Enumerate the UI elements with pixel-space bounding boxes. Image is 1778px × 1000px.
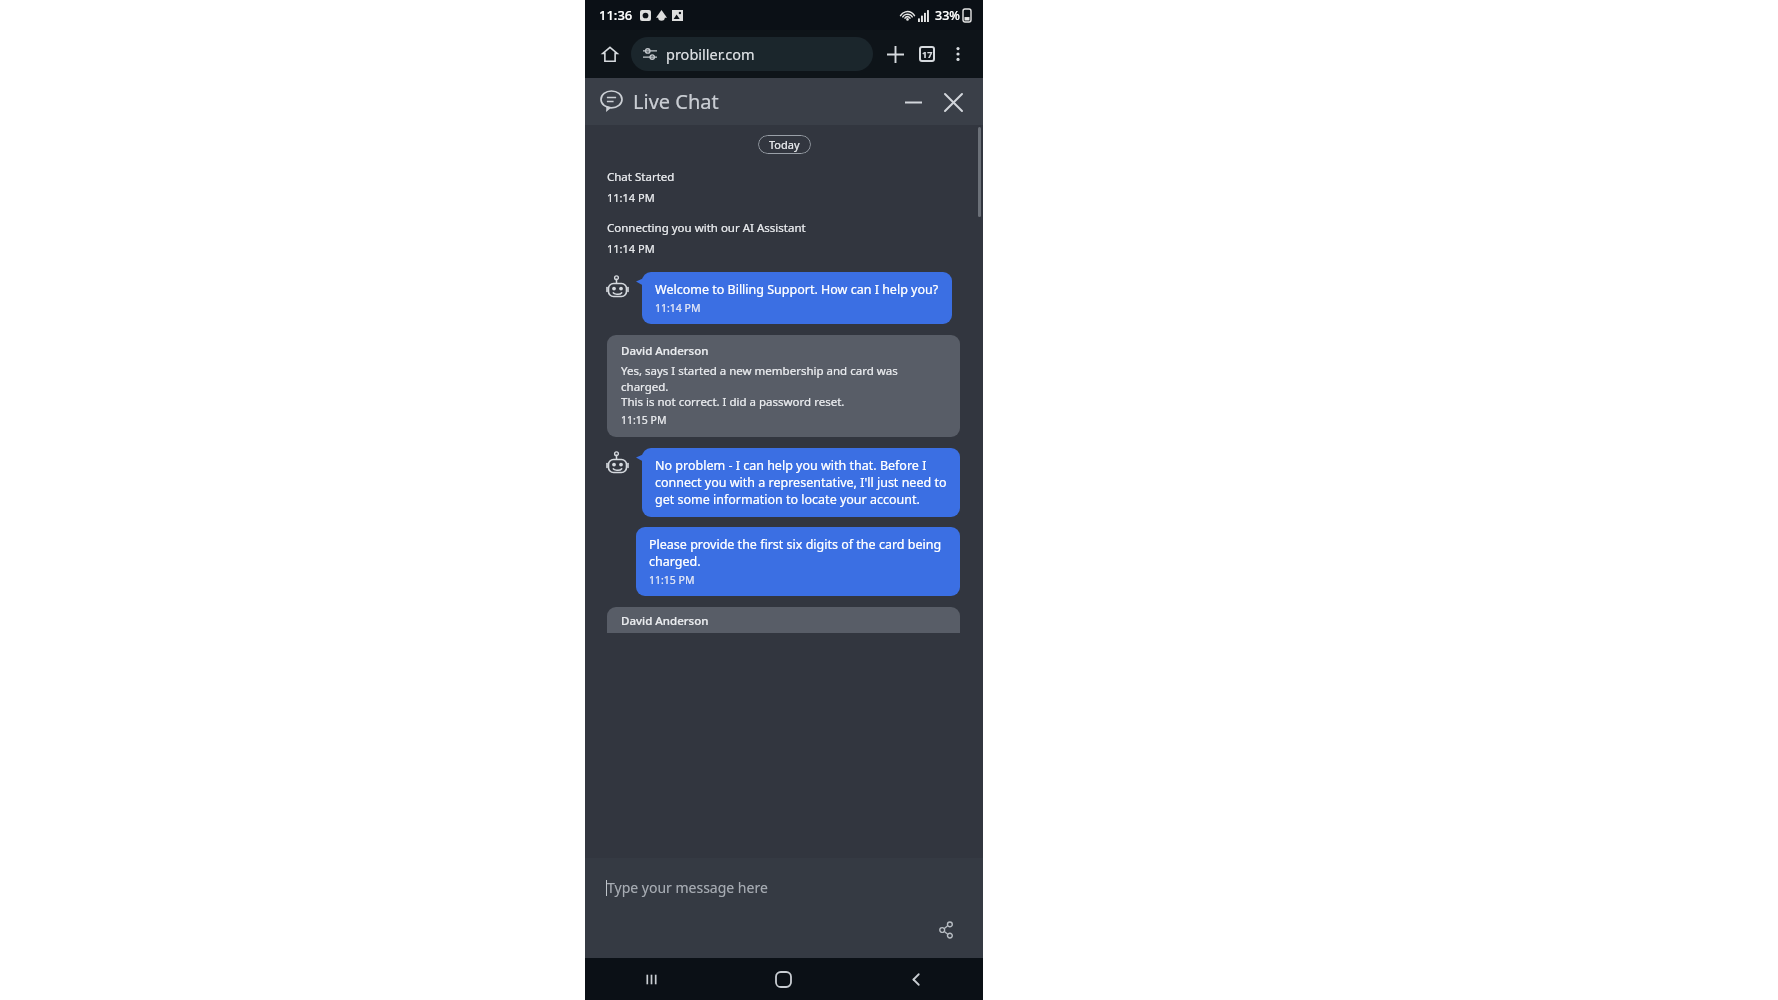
staticText: No problem - I can help you with that. B… bbox=[655, 457, 947, 508]
staticText: Please provide the first six digits of t… bbox=[649, 536, 947, 570]
staticText: Type your message here bbox=[607, 878, 768, 897]
button[interactable]: Tabs bbox=[911, 38, 943, 70]
staticText: 33% bbox=[935, 7, 960, 24]
staticText: Chat Started bbox=[607, 169, 675, 185]
button[interactable]: Attach bbox=[931, 914, 963, 946]
staticText: 11:36 bbox=[599, 6, 633, 24]
button[interactable]: David Anderson bbox=[607, 607, 960, 633]
button[interactable]: Home bbox=[717, 958, 850, 1000]
staticText: David Anderson bbox=[621, 343, 709, 359]
staticText: David Anderson bbox=[621, 613, 709, 629]
button[interactable]: Minimize bbox=[893, 82, 933, 122]
button[interactable]: Close chat bbox=[933, 82, 973, 122]
staticText: probiller.com bbox=[666, 44, 755, 64]
button[interactable]: Welcome to Billing Support. How can I he… bbox=[642, 272, 952, 324]
button[interactable]: More options bbox=[943, 39, 973, 69]
staticText: 17 bbox=[922, 48, 933, 60]
staticText: Live Chat bbox=[633, 88, 719, 115]
button[interactable]: David Anderson bbox=[607, 335, 960, 437]
staticText: 11:15 PM bbox=[649, 573, 695, 587]
staticText: Connecting you with our AI Assistant bbox=[607, 220, 806, 236]
staticText: Welcome to Billing Support. How can I he… bbox=[655, 281, 939, 298]
staticText: Today bbox=[769, 137, 800, 152]
button[interactable]: New tab bbox=[879, 38, 911, 70]
button[interactable]: Please provide the first six digits of t… bbox=[636, 527, 960, 596]
button[interactable]: Home bbox=[595, 39, 625, 69]
staticText: This is not correct. I did a password re… bbox=[621, 394, 845, 410]
staticText: 11:14 PM bbox=[607, 190, 655, 205]
button[interactable]: Back bbox=[850, 958, 983, 1000]
staticText: Yes, says I started a new membership and… bbox=[621, 363, 946, 394]
staticText: 11:14 PM bbox=[607, 241, 655, 256]
staticText: 11:15 PM bbox=[621, 413, 667, 427]
button[interactable]: probiller.com bbox=[631, 37, 873, 71]
button[interactable]: Recent apps bbox=[585, 958, 717, 1000]
button[interactable]: No problem - I can help you with that. B… bbox=[642, 448, 960, 517]
staticText: 11:14 PM bbox=[655, 301, 701, 315]
